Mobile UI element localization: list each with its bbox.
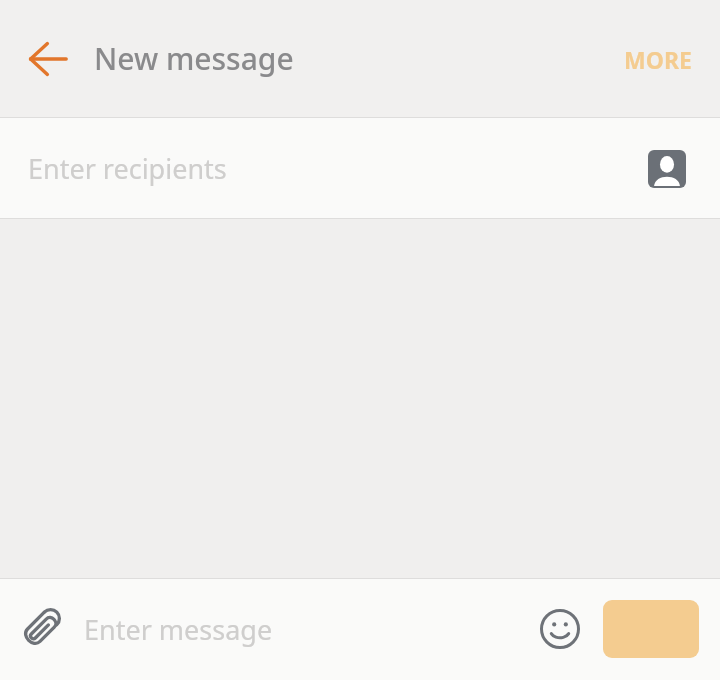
staticText: Enter message: [84, 611, 273, 648]
button[interactable]: Emoji: [532, 601, 588, 657]
button[interactable]: Back: [18, 28, 80, 90]
staticText: Enter recipients: [28, 150, 227, 187]
button[interactable]: Enter recipients: [0, 118, 720, 219]
button[interactable]: Attach: [10, 599, 70, 659]
button[interactable]: Add contact: [640, 142, 694, 196]
button[interactable]: MORE: [606, 32, 710, 87]
button[interactable]: Send: [603, 600, 699, 658]
staticText: MORE: [624, 44, 692, 75]
staticText: New message: [94, 38, 294, 79]
